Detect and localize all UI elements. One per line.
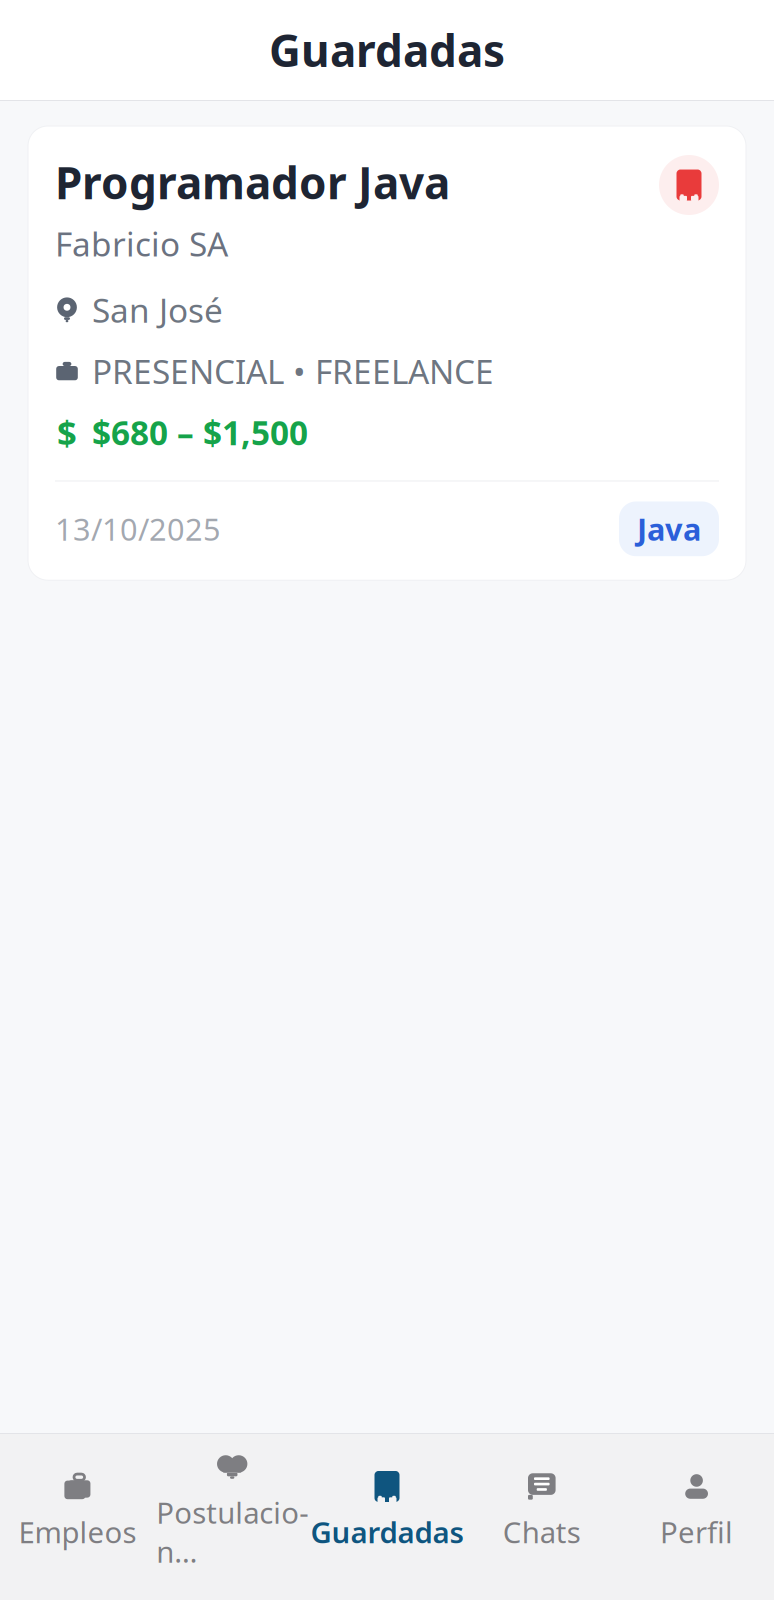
- staticText: 13/10/2025: [55, 508, 221, 549]
- staticText: $: [57, 409, 77, 455]
- button[interactable]: Quitar de guardadas: [659, 155, 719, 215]
- button[interactable]: Java: [619, 501, 719, 556]
- button[interactable]: Postulacion…: [155, 1434, 310, 1581]
- staticText: Perfil: [660, 1512, 733, 1551]
- staticText: Empleos: [18, 1512, 136, 1551]
- button[interactable]: Perfil: [619, 1453, 774, 1561]
- staticText: $680 – $1,500: [92, 410, 308, 454]
- staticText: Guardadas: [269, 21, 505, 79]
- staticText: Programador Java: [55, 153, 450, 211]
- staticText: PRESENCIAL • FREELANCE: [92, 349, 494, 393]
- button[interactable]: Empleos: [0, 1453, 155, 1561]
- staticText: Postulacion…: [156, 1493, 308, 1571]
- staticText: Guardadas: [310, 1512, 463, 1551]
- button[interactable]: Chats: [464, 1453, 619, 1561]
- staticText: San José: [92, 288, 223, 332]
- staticText: Java: [637, 508, 701, 549]
- staticText: Fabricio SA: [55, 221, 228, 266]
- button[interactable]: Guardadas: [310, 1453, 464, 1561]
- staticText: Chats: [503, 1512, 581, 1551]
